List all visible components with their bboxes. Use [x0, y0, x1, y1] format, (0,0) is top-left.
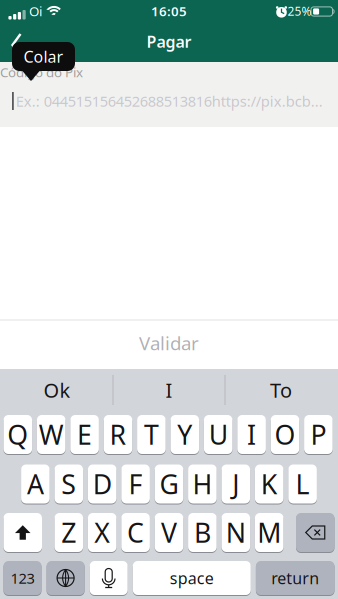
button[interactable]: A	[0, 0, 338, 599]
button[interactable]: L	[0, 0, 338, 599]
button[interactable]: I	[117, 370, 221, 410]
staticText: Z	[61, 515, 76, 550]
staticText: Y	[177, 417, 192, 452]
staticText: P	[310, 417, 326, 452]
button[interactable]: D	[0, 0, 338, 599]
staticText: Colar	[23, 46, 63, 67]
button[interactable]: T	[0, 0, 338, 599]
button[interactable]: Colar	[0, 0, 338, 599]
button[interactable]: P	[0, 0, 338, 599]
staticText: Validar	[139, 331, 199, 355]
staticText: R	[109, 417, 126, 452]
staticText: F	[129, 466, 143, 502]
button[interactable]: Numbers	[0, 0, 338, 599]
staticText: To	[270, 377, 292, 403]
staticText: K	[261, 466, 278, 502]
button[interactable]: Back	[11, 33, 21, 57]
button[interactable]: C	[0, 0, 338, 599]
button[interactable]: E	[0, 0, 338, 599]
button[interactable]: Dictate	[0, 0, 338, 599]
staticText: Oi	[29, 2, 42, 20]
staticText: C	[127, 515, 144, 550]
button[interactable]: Next keyboard	[0, 0, 338, 599]
staticText: return	[271, 567, 319, 589]
staticText: V	[161, 515, 177, 550]
staticText: U	[209, 417, 228, 452]
staticText: G	[159, 466, 178, 502]
staticText: E	[77, 417, 92, 452]
staticText: D	[93, 466, 112, 502]
button[interactable]: R	[0, 0, 338, 599]
button[interactable]: K	[0, 0, 338, 599]
button[interactable]: H	[0, 0, 338, 599]
staticText: L	[296, 466, 310, 502]
button[interactable]: Z	[0, 0, 338, 599]
button[interactable]: Y	[0, 0, 338, 599]
staticText: B	[194, 515, 211, 550]
button[interactable]: space	[0, 0, 338, 599]
button[interactable]: Shift	[0, 0, 338, 599]
staticText: A	[27, 466, 44, 502]
staticText: O	[274, 417, 295, 452]
button[interactable]: To	[229, 370, 333, 410]
staticText: Q	[7, 417, 28, 452]
button[interactable]: Q	[0, 0, 338, 599]
button[interactable]: U	[0, 0, 338, 599]
staticText: Ok	[43, 377, 70, 403]
button[interactable]: return	[0, 0, 338, 599]
button[interactable]: N	[0, 0, 338, 599]
staticText: J	[232, 466, 239, 502]
staticText: W	[39, 417, 64, 452]
staticText: Código do Pix	[0, 63, 83, 81]
staticText: I	[165, 377, 172, 403]
staticText: 25%	[287, 3, 311, 19]
staticText: M	[257, 515, 281, 550]
button[interactable]: V	[0, 0, 338, 599]
button[interactable]: M	[0, 0, 338, 599]
button[interactable]: B	[0, 0, 338, 599]
staticText: H	[192, 466, 212, 502]
button[interactable]: F	[0, 0, 338, 599]
staticText: 123	[10, 568, 34, 588]
button[interactable]: J	[0, 0, 338, 599]
button[interactable]: O	[0, 0, 338, 599]
button[interactable]: W	[0, 0, 338, 599]
staticText: T	[144, 417, 159, 452]
staticText: X	[94, 515, 110, 550]
button[interactable]: X	[0, 0, 338, 599]
staticText: Pagar	[146, 31, 191, 52]
button[interactable]: G	[0, 0, 338, 599]
staticText: Ex.: 044515156452688513816https://pix.bc…	[16, 91, 323, 111]
button[interactable]: Validar	[139, 331, 199, 355]
button[interactable]: I	[0, 0, 338, 599]
staticText: 16:05	[151, 2, 187, 20]
staticText: S	[61, 466, 76, 502]
button[interactable]: S	[0, 0, 338, 599]
button[interactable]: Ok	[5, 370, 109, 410]
button[interactable]: Código do Pix	[0, 91, 338, 111]
button[interactable]: Delete	[0, 0, 338, 599]
staticText: space	[170, 567, 214, 589]
staticText: I	[247, 417, 256, 452]
staticText: N	[226, 515, 246, 550]
